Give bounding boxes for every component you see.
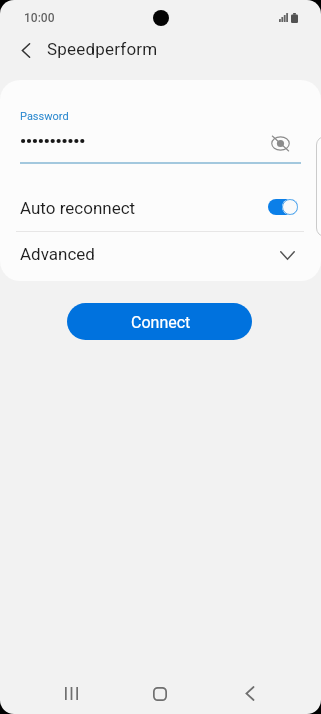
button[interactable]: Recent apps [49, 673, 93, 714]
staticText: Auto reconnect [20, 198, 136, 218]
button[interactable] [0, 163, 311, 231]
button[interactable]: Show password [267, 130, 294, 157]
staticText: Advanced [20, 244, 95, 264]
staticText: Connect [131, 313, 191, 332]
staticText: Password [20, 110, 69, 123]
button[interactable]: Home [138, 673, 182, 714]
button[interactable]: Connect [67, 303, 252, 340]
staticText: 10:00 [24, 11, 55, 25]
button[interactable]: Navigate up [7, 31, 45, 69]
button[interactable] [0, 232, 311, 281]
staticText: Speedperform [47, 39, 158, 59]
button[interactable] [0, 80, 311, 163]
button[interactable]: Back [228, 673, 272, 714]
